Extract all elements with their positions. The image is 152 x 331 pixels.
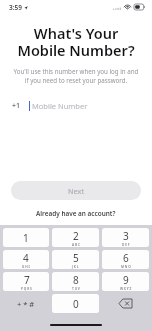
button[interactable]: 7 [3, 272, 49, 291]
button[interactable]: 6 [102, 250, 149, 269]
staticText: What's Your Mobile Number? [14, 23, 138, 60]
staticText: 3 [123, 229, 129, 243]
staticText: 8 [73, 273, 79, 287]
staticText: T U V [72, 287, 80, 291]
staticText: 5 [73, 251, 79, 265]
button[interactable]: 1 [3, 228, 49, 247]
staticText: Next [68, 186, 85, 196]
staticText: J K L [72, 265, 79, 269]
staticText: You'll use this number when you log in a… [10, 67, 142, 85]
staticText: M N O [121, 265, 131, 269]
staticText: D E F [122, 243, 130, 247]
staticText: + * # [17, 299, 35, 309]
staticText: Mobile Number [32, 101, 88, 111]
button[interactable]: 2 [52, 228, 99, 247]
button[interactable]: 0 [52, 294, 99, 313]
button[interactable]: 4 [3, 250, 49, 269]
button[interactable]: 8 [52, 272, 99, 291]
staticText: 7 [24, 273, 30, 287]
staticText: 1 [23, 231, 29, 245]
staticText: G H I [22, 265, 30, 269]
button[interactable]: Already have an account? [0, 209, 152, 218]
staticText: W X Y Z [120, 287, 132, 291]
button[interactable]: Delete [102, 294, 149, 313]
staticText: Already have an account? [36, 209, 116, 218]
staticText: +1 [12, 101, 21, 111]
button[interactable]: 3 [102, 228, 149, 247]
button[interactable]: + * # [3, 294, 49, 313]
staticText: 2 [73, 229, 79, 243]
button[interactable]: 9 [102, 272, 149, 291]
button[interactable]: +1 [12, 97, 140, 114]
staticText: A B C [72, 243, 80, 247]
button[interactable]: 5 [52, 250, 99, 269]
staticText: 0 [73, 297, 79, 311]
staticText: 6 [123, 251, 129, 265]
staticText: 9 [123, 273, 129, 287]
staticText: 3:59 [9, 3, 22, 12]
button[interactable]: Next [11, 181, 141, 200]
staticText: 4 [23, 251, 29, 265]
staticText: P Q R S [21, 287, 32, 291]
